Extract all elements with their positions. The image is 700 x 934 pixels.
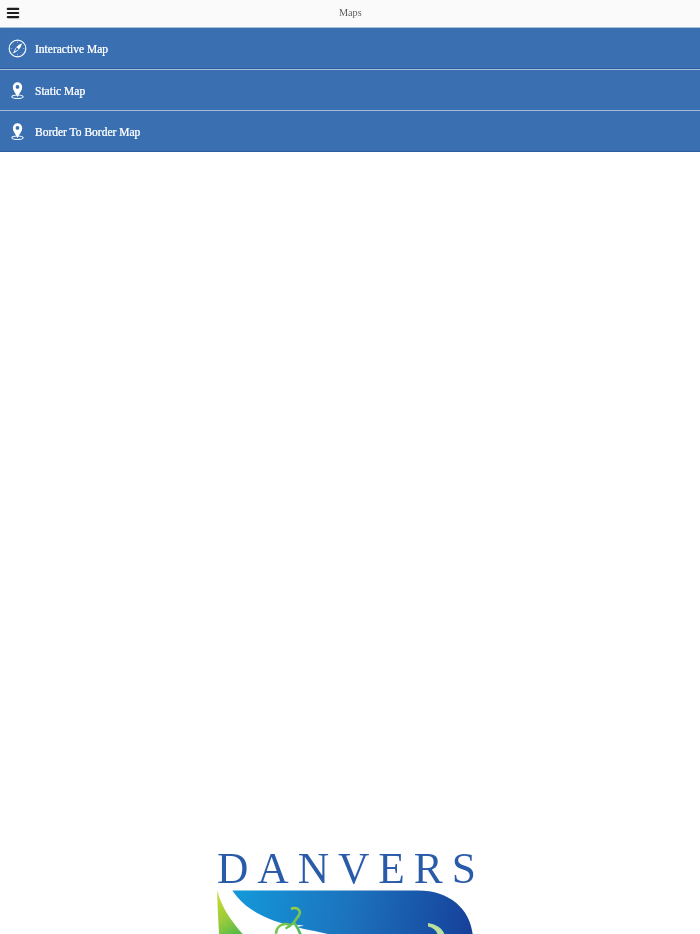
button[interactable]: Static Map bbox=[0, 69, 700, 111]
button[interactable]: Open navigation menu bbox=[1, 1, 25, 25]
staticText: Interactive Map bbox=[35, 43, 109, 56]
button[interactable]: Border To Border Map bbox=[0, 110, 700, 152]
staticText: Static Map bbox=[35, 85, 86, 98]
staticText: Maps bbox=[339, 7, 362, 18]
button[interactable]: Interactive Map bbox=[0, 27, 700, 69]
staticText: DANVERS bbox=[217, 844, 485, 892]
staticText: Border To Border Map bbox=[35, 126, 141, 139]
